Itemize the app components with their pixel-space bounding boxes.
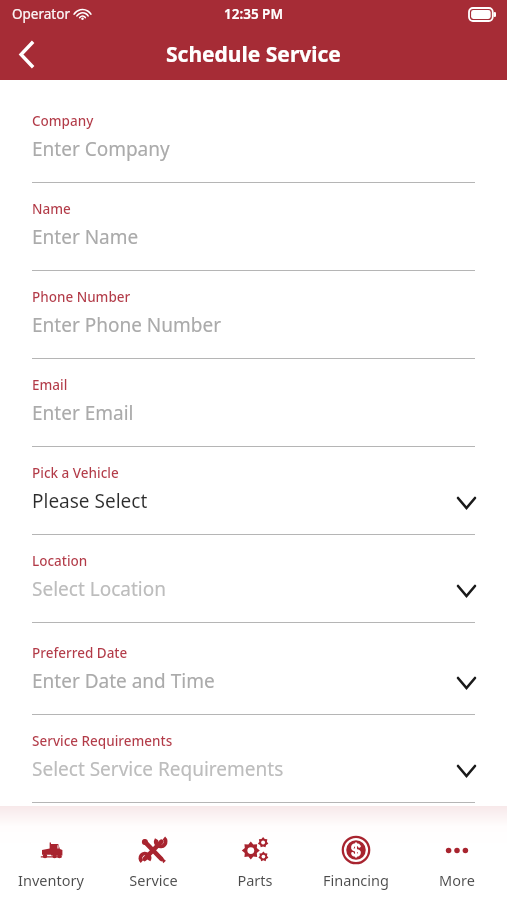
staticText: 12:35 PM — [224, 5, 283, 23]
button[interactable]: Service — [102, 820, 204, 900]
staticText: Inventory — [18, 870, 84, 890]
staticText: Operator — [12, 5, 70, 23]
staticText: Please Select — [32, 488, 148, 514]
staticText: Name — [32, 200, 71, 218]
staticText: Company — [32, 112, 94, 130]
staticText: Service — [129, 870, 178, 890]
staticText: Enter Name — [32, 224, 139, 250]
staticText: Parts — [237, 870, 273, 890]
staticText: Pick a Vehicle — [32, 464, 119, 482]
button[interactable]: Parts — [204, 820, 305, 900]
staticText: Email — [32, 376, 68, 394]
button[interactable]: Location — [0, 550, 507, 625]
staticText: Schedule Service — [166, 40, 341, 69]
button[interactable]: Company — [0, 110, 507, 185]
staticText: Phone Number — [32, 288, 131, 306]
staticText: Enter Phone Number — [32, 312, 221, 338]
staticText: Service Requirements — [32, 732, 173, 750]
staticText: Enter Date and Time — [32, 668, 215, 694]
staticText: Select Location — [32, 576, 166, 602]
staticText: Location — [32, 552, 88, 570]
staticText: Preferred Date — [32, 644, 128, 662]
button[interactable]: Pick a Vehicle — [0, 462, 507, 537]
button[interactable]: Email — [0, 374, 507, 449]
button[interactable]: Name — [0, 198, 507, 273]
staticText: Enter Email — [32, 400, 134, 426]
staticText: Enter Company — [32, 136, 170, 162]
staticText: Select Service Requirements — [32, 756, 284, 782]
staticText: Financing — [323, 870, 389, 890]
button[interactable]: Financing — [305, 820, 406, 900]
button[interactable]: Service Requirements — [0, 730, 507, 805]
button[interactable]: Phone Number — [0, 286, 507, 361]
button[interactable]: Preferred Date — [0, 642, 507, 717]
button[interactable]: Back — [0, 28, 52, 80]
button[interactable]: More — [406, 820, 507, 900]
button[interactable]: Inventory — [0, 820, 102, 900]
staticText: More — [439, 870, 475, 890]
